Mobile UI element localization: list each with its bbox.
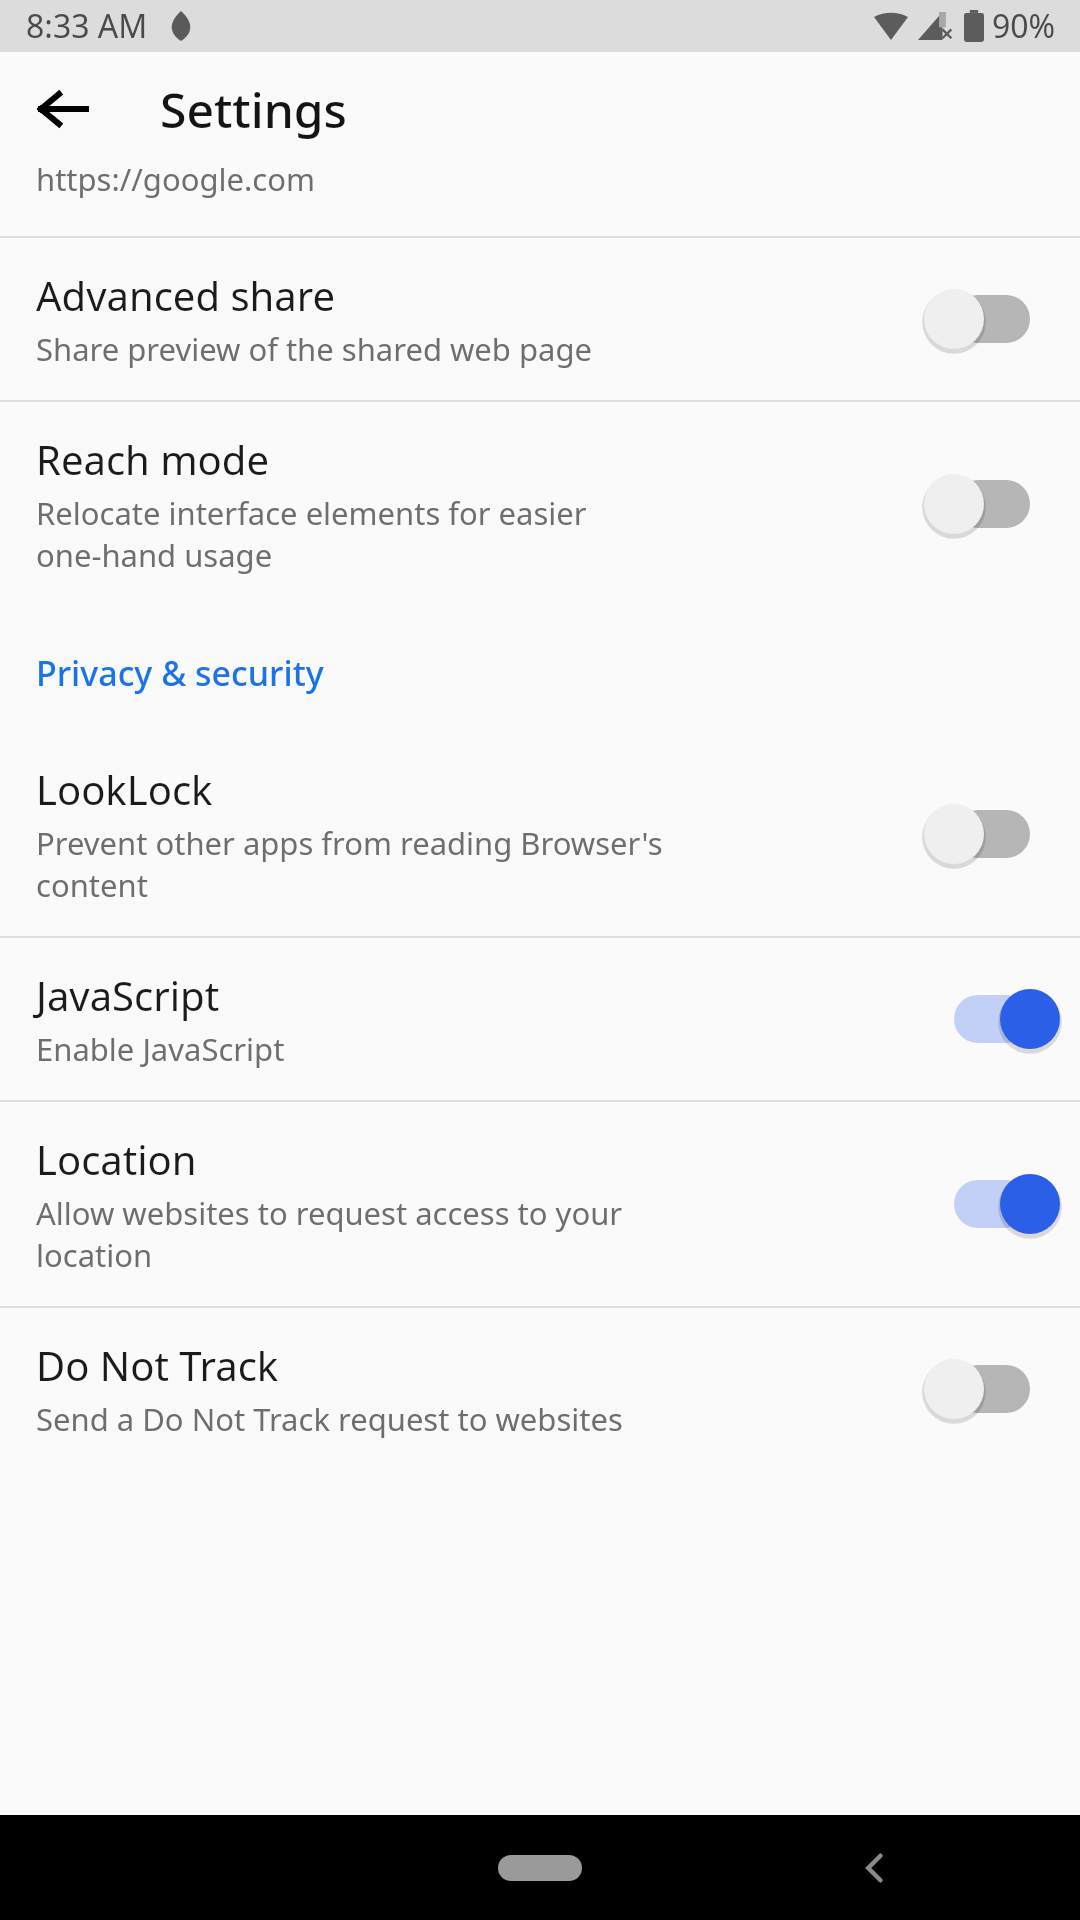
- button[interactable]: Off: [946, 799, 1050, 869]
- button[interactable]: Advanced share: [0, 238, 1080, 400]
- button[interactable]: Location: [0, 1102, 1080, 1306]
- staticText: Prevent other apps from reading Browser'…: [36, 822, 663, 864]
- staticText: location: [36, 1234, 153, 1276]
- button[interactable]: Back: [840, 1833, 910, 1903]
- staticText: Enable JavaScript: [36, 1028, 285, 1070]
- staticText: one-hand usage: [36, 534, 273, 576]
- staticText: LookLock: [36, 762, 213, 816]
- staticText: Send a Do Not Track request to websites: [36, 1398, 623, 1440]
- staticText: Location: [36, 1132, 197, 1186]
- staticText: Privacy & security: [36, 650, 324, 696]
- button[interactable]: Off: [946, 284, 1050, 354]
- staticText: Reach mode: [36, 432, 269, 486]
- staticText: Allow websites to request access to your: [36, 1192, 623, 1234]
- button[interactable]: On: [946, 984, 1050, 1054]
- staticText: JavaScript: [36, 968, 220, 1022]
- staticText: 8:33 AM: [26, 4, 148, 48]
- staticText: Share preview of the shared web page: [36, 328, 592, 370]
- staticText: Settings: [160, 77, 347, 142]
- button[interactable]: Back: [20, 66, 106, 152]
- button[interactable]: Do Not Track: [0, 1308, 1080, 1470]
- staticText: Do Not Track: [36, 1338, 279, 1392]
- staticText: Relocate interface elements for easier: [36, 492, 587, 534]
- button[interactable]: LookLock: [0, 732, 1080, 936]
- staticText: 90%: [992, 4, 1056, 48]
- button[interactable]: On: [946, 1169, 1050, 1239]
- button[interactable]: Home: [460, 1838, 620, 1898]
- staticText: Advanced share: [36, 268, 335, 322]
- button[interactable]: JavaScript: [0, 938, 1080, 1100]
- staticText: https://google.com: [36, 158, 315, 200]
- button[interactable]: Reach mode: [0, 402, 1080, 606]
- button[interactable]: Off: [946, 1354, 1050, 1424]
- staticText: content: [36, 864, 148, 906]
- button[interactable]: Off: [946, 469, 1050, 539]
